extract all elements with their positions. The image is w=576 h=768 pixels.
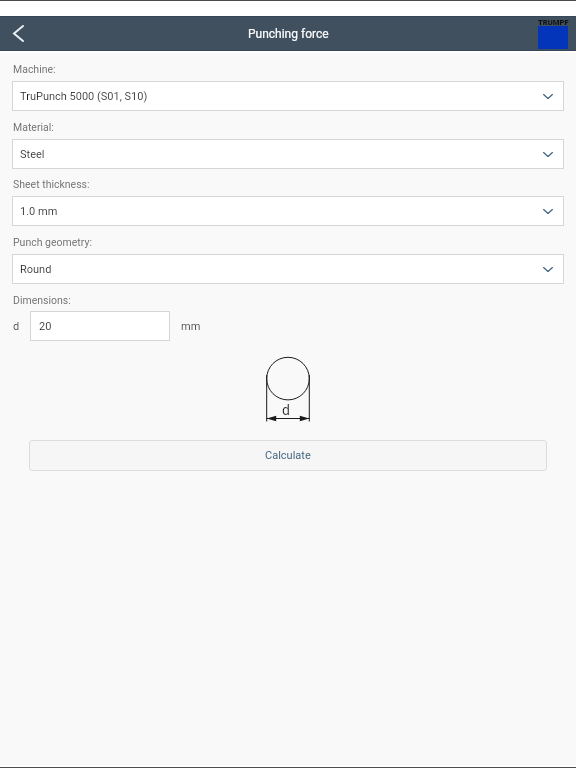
staticText: TRUMPF (538, 18, 569, 27)
staticText: Sheet thickness: (13, 178, 90, 190)
staticText: Machine: (13, 63, 56, 75)
button[interactable]: Round (12, 254, 564, 284)
button[interactable]: Calculate (29, 440, 547, 471)
button[interactable]: Steel (12, 139, 564, 169)
staticText: Dimensions: (13, 294, 71, 306)
staticText: Round (20, 263, 52, 276)
staticText: Steel (20, 148, 45, 161)
staticText: 1.0 mm (20, 205, 58, 218)
button[interactable]: 20 (30, 311, 170, 341)
staticText: d (13, 320, 20, 333)
staticText: mm (181, 320, 201, 333)
staticText: Material: (13, 121, 54, 133)
button[interactable]: TruPunch 5000 (S01, S10) (12, 81, 564, 111)
button[interactable]: Back (0, 16, 36, 51)
staticText: Punching force (248, 27, 329, 41)
button[interactable]: 1.0 mm (12, 196, 564, 226)
staticText: Punch geometry: (13, 236, 92, 248)
staticText: d (282, 402, 290, 418)
staticText: TruPunch 5000 (S01, S10) (20, 90, 148, 103)
staticText: 20 (39, 320, 52, 333)
staticText: Calculate (265, 449, 311, 462)
